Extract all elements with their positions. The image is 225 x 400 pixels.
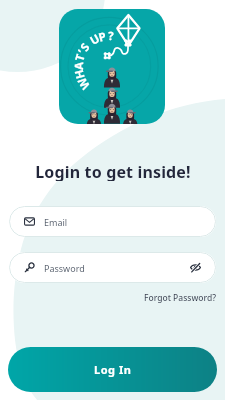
- staticText: Login to get inside!: [35, 161, 191, 181]
- button[interactable]: Log In: [8, 347, 217, 392]
- staticText: W: [74, 75, 92, 93]
- staticText: Email: [44, 216, 68, 228]
- staticText: U: [87, 30, 102, 47]
- staticText: Log In: [94, 362, 132, 377]
- staticText: T: [71, 52, 87, 63]
- staticText: Forgot Password?: [144, 292, 216, 304]
- button[interactable]: Email: [9, 206, 216, 237]
- staticText: H: [71, 68, 87, 81]
- staticText: A: [71, 62, 85, 70]
- staticText: S: [77, 40, 92, 54]
- button[interactable]: Show password: [188, 260, 203, 275]
- staticText: ?: [108, 28, 114, 42]
- button[interactable]: Forgot Password?: [142, 290, 218, 306]
- staticText: ’: [74, 47, 88, 56]
- staticText: P: [96, 28, 107, 44]
- button[interactable]: Password: [9, 252, 216, 283]
- staticText: Password: [44, 262, 85, 274]
